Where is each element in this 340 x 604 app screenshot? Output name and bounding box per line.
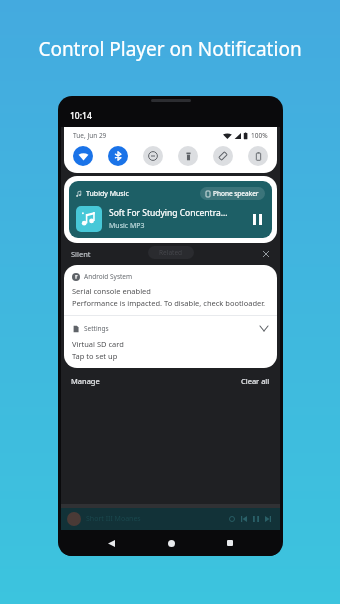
- staticText: Clear all: [241, 376, 270, 386]
- button[interactable]: Battery saver: [248, 146, 268, 166]
- button[interactable]: Phone speaker: [206, 189, 259, 198]
- staticText: Virtual SD card: [72, 339, 124, 349]
- button[interactable]: Settings: [64, 316, 277, 368]
- staticText: Serial console enabled: [72, 286, 151, 296]
- staticText: 10:14: [70, 110, 92, 122]
- staticText: Settings: [84, 324, 109, 333]
- button[interactable]: Android System: [64, 265, 277, 315]
- button[interactable]: Pause: [250, 513, 262, 525]
- button[interactable]: Bluetooth: [108, 146, 128, 166]
- button[interactable]: Close: [261, 249, 271, 259]
- button[interactable]: Next: [262, 513, 274, 525]
- staticText: Music MP3: [109, 221, 145, 231]
- staticText: Phone speaker: [213, 189, 259, 198]
- button[interactable]: Silent: [71, 249, 91, 259]
- button[interactable]: Clear all: [241, 373, 270, 389]
- button[interactable]: Back: [102, 534, 120, 552]
- staticText: 100%: [251, 131, 268, 140]
- button[interactable]: Manage: [71, 373, 100, 389]
- button[interactable]: Replay: [226, 513, 238, 525]
- button[interactable]: Flashlight: [178, 146, 198, 166]
- staticText: Manage: [71, 376, 100, 386]
- staticText: Tue, Jun 29: [73, 131, 107, 140]
- button[interactable]: Wi-Fi: [73, 146, 93, 166]
- button[interactable]: Do not disturb: [143, 146, 163, 166]
- staticText: Related: [159, 248, 183, 257]
- button[interactable]: Short III Moanes: [67, 508, 274, 530]
- button[interactable]: Pause: [249, 211, 265, 227]
- button[interactable]: Auto rotate: [213, 146, 233, 166]
- staticText: Tubidy Music: [86, 189, 129, 199]
- staticText: Control Player on Notification: [4, 36, 336, 62]
- button[interactable]: Related: [148, 246, 194, 259]
- staticText: Short III Moanes: [86, 514, 141, 524]
- staticText: Performance is impacted. To disable, che…: [72, 298, 266, 308]
- staticText: Android System: [84, 272, 133, 281]
- button[interactable]: Previous: [238, 513, 250, 525]
- button[interactable]: Recent apps: [221, 534, 239, 552]
- staticText: Soft For Studying Concentra…: [109, 207, 228, 219]
- staticText: Tap to set up: [72, 351, 118, 361]
- button[interactable]: Home: [162, 534, 180, 552]
- button[interactable]: Expand: [258, 323, 269, 334]
